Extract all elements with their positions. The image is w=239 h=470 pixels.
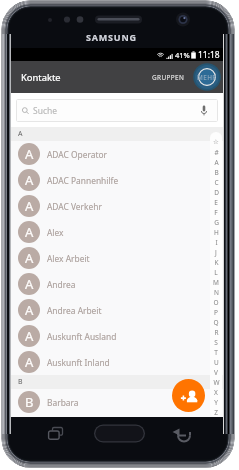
staticText: B (214, 168, 219, 177)
staticText: Auskunft Ausland (47, 331, 117, 342)
button[interactable]: A (11, 219, 223, 245)
button[interactable]: A (11, 323, 223, 349)
staticText: W (213, 378, 220, 387)
staticText: Kontakte (21, 71, 61, 84)
staticText: M (213, 278, 219, 287)
staticText: F (214, 208, 218, 217)
staticText: Q (213, 318, 219, 327)
button[interactable]: Add contact (172, 379, 205, 412)
button[interactable]: A (11, 271, 223, 297)
staticText: Alex Arbeit (47, 253, 90, 264)
button[interactable]: GRUPPEN (148, 65, 189, 90)
staticText: D (214, 188, 219, 197)
staticText: A (25, 171, 34, 189)
staticText: N (214, 288, 219, 297)
staticText: ADAC Verkehr (47, 201, 102, 212)
staticText: I (215, 238, 218, 247)
staticText: 41% (175, 50, 190, 60)
staticText: A (25, 327, 34, 345)
staticText: Suche (33, 105, 58, 117)
staticText: A (25, 197, 34, 215)
staticText: Auskunft Inland (47, 357, 110, 368)
staticText: V (214, 368, 218, 377)
staticText: C (214, 178, 219, 187)
staticText: J (215, 248, 217, 257)
staticText: B (25, 393, 34, 411)
button[interactable]: A (11, 141, 223, 167)
staticText: K (214, 258, 219, 267)
staticText: Andrea (47, 279, 76, 290)
staticText: G (214, 218, 219, 227)
button[interactable]: Suche (16, 99, 218, 122)
staticText: MEHR (197, 73, 217, 82)
staticText: E (214, 198, 218, 207)
staticText: P (214, 308, 218, 317)
button[interactable]: B (11, 389, 223, 415)
staticText: Z (214, 408, 218, 417)
staticText: X (214, 388, 218, 397)
staticText: A (214, 158, 219, 167)
button[interactable]: A (11, 193, 223, 219)
button[interactable]: A (11, 245, 223, 271)
staticText: ADAC Operator (47, 149, 108, 160)
staticText: A (25, 223, 34, 241)
staticText: ADAC Pannenhilfe (47, 175, 119, 186)
staticText: Y (214, 398, 218, 407)
staticText: Barbara (47, 397, 79, 408)
staticText: Andrea Arbeit (47, 305, 102, 316)
staticText: U (214, 358, 219, 367)
button[interactable]: Alphabet index (210, 132, 222, 417)
staticText: 11:18 (198, 49, 220, 61)
staticText: A (25, 275, 34, 293)
staticText: Alex (47, 227, 64, 238)
staticText: ☆ (213, 138, 219, 146)
staticText: B (18, 377, 23, 387)
staticText: R (214, 328, 219, 337)
staticText: A (18, 129, 23, 139)
staticText: S (214, 338, 218, 347)
staticText: A (25, 145, 34, 163)
staticText: A (25, 301, 34, 319)
staticText: SAMSUNG (86, 31, 137, 43)
button[interactable]: MEHR (191, 61, 223, 93)
button[interactable]: A (11, 167, 223, 193)
staticText: O (213, 298, 219, 307)
staticText: # (214, 148, 219, 157)
staticText: L (214, 268, 218, 277)
staticText: A (25, 249, 34, 267)
button[interactable]: A (11, 349, 223, 375)
staticText: T (214, 348, 218, 357)
staticText: H (214, 228, 219, 237)
button[interactable]: A (11, 297, 223, 323)
staticText: A (25, 353, 34, 371)
